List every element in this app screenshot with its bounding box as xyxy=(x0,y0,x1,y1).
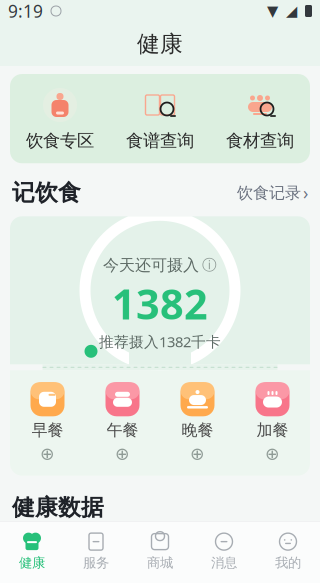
staticText: 推荐摄入1382千卡 xyxy=(99,332,221,351)
button[interactable]: 商城 xyxy=(128,526,192,577)
staticText: ⊕ xyxy=(265,444,280,464)
staticText: 1382 xyxy=(112,276,208,331)
staticText: ⊕ xyxy=(190,444,205,464)
staticText: 午餐 xyxy=(106,420,138,440)
staticText: ▼ xyxy=(267,3,278,19)
button[interactable]: 加餐 xyxy=(235,382,310,464)
button[interactable]: 健康 xyxy=(0,526,64,577)
staticText: 食材查询 xyxy=(226,130,294,151)
staticText: 消息 xyxy=(211,555,237,571)
button[interactable]: 食材查询 xyxy=(210,74,310,163)
staticText: 9:19 xyxy=(8,0,43,22)
staticText: › xyxy=(303,181,308,204)
button[interactable]: 食谱查询 xyxy=(110,74,210,163)
staticText: 服务 xyxy=(83,555,109,571)
staticText: ⓘ xyxy=(202,256,217,274)
staticText: 健康 xyxy=(19,555,45,571)
staticText: 早餐 xyxy=(31,420,63,440)
button[interactable]: 我的 xyxy=(256,526,320,577)
staticText: 食谱查询 xyxy=(126,130,194,151)
staticText: 我的 xyxy=(275,555,301,571)
staticText: ◢ xyxy=(286,3,297,19)
staticText: 晚餐 xyxy=(181,420,213,440)
button[interactable]: 消息 xyxy=(192,526,256,577)
staticText: 加餐 xyxy=(256,420,288,440)
button[interactable]: 午餐 xyxy=(85,382,160,464)
staticText: 健康数据 xyxy=(12,494,104,521)
staticText: 健康 xyxy=(137,30,183,58)
button[interactable]: 晚餐 xyxy=(160,382,235,464)
staticText: 今天还可摄入 xyxy=(103,255,199,275)
staticText: 记饮食 xyxy=(12,179,81,207)
button[interactable]: 饮食专区 xyxy=(10,74,110,163)
staticText: ⊕ xyxy=(40,444,55,464)
staticText: ⊕ xyxy=(115,444,130,464)
staticText: 饮食专区 xyxy=(26,130,94,151)
button[interactable]: 服务 xyxy=(64,526,128,577)
button[interactable]: 饮食记录 xyxy=(237,177,308,208)
staticText: 商城 xyxy=(147,555,173,571)
button[interactable]: 早餐 xyxy=(10,382,85,464)
staticText: 饮食记录 xyxy=(237,183,301,203)
